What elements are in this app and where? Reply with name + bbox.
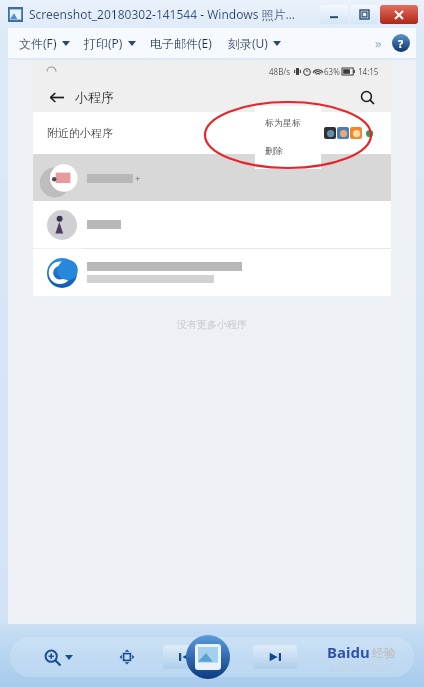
button[interactable]: Close <box>380 5 418 24</box>
staticText: 小程序 <box>75 89 114 105</box>
button[interactable]: 打印(P) <box>83 32 137 54</box>
button[interactable]: Mini program <box>324 127 336 139</box>
staticText: 14:15 <box>358 66 379 77</box>
staticText: + <box>135 172 141 184</box>
button[interactable]: 附近的小程序 <box>33 112 391 154</box>
staticText: Screenshot_20180302-141544 - Windows 照片… <box>29 6 296 22</box>
button[interactable] <box>33 249 391 296</box>
staticText: 63% <box>324 66 340 77</box>
button[interactable]: Help <box>392 34 410 52</box>
staticText: 电子邮件(E) <box>150 35 212 51</box>
button[interactable] <box>33 201 391 248</box>
staticText: 经验 <box>372 645 396 660</box>
button[interactable]: Back <box>45 86 67 108</box>
button[interactable]: 电子邮件(E) <box>149 32 213 54</box>
staticText: 48B/s <box>269 66 291 77</box>
button[interactable]: Restore <box>350 5 378 24</box>
button[interactable]: Next <box>253 645 297 669</box>
staticText: jingyan.baidu.com <box>331 662 392 672</box>
button[interactable]: Mini program <box>337 127 349 139</box>
button[interactable]: 文件(F) <box>18 32 71 54</box>
staticText: 打印(P) <box>84 35 123 51</box>
staticText: » <box>375 34 382 52</box>
button[interactable]: + <box>33 154 391 201</box>
staticText: ? <box>398 36 404 51</box>
button[interactable]: Minimize <box>320 5 348 24</box>
button[interactable]: Mini program <box>363 127 375 139</box>
button[interactable]: Zoom <box>44 649 73 666</box>
staticText: 没有更多小程序 <box>177 318 247 331</box>
button[interactable]: Show picture <box>186 635 230 679</box>
button[interactable]: Search <box>355 85 379 109</box>
button[interactable]: Previous <box>163 645 207 669</box>
staticText: 标为星标 <box>265 117 301 128</box>
staticText: 删除 <box>265 145 283 156</box>
staticText: 附近的小程序 <box>47 126 113 140</box>
button[interactable]: Mini program <box>350 127 362 139</box>
button[interactable]: Fit to window <box>117 647 137 667</box>
staticText: 刻录(U) <box>228 35 268 51</box>
staticText: 文件(F) <box>19 35 57 51</box>
button[interactable]: 刻录(U) <box>227 32 282 54</box>
staticText: Baidu <box>327 642 370 662</box>
